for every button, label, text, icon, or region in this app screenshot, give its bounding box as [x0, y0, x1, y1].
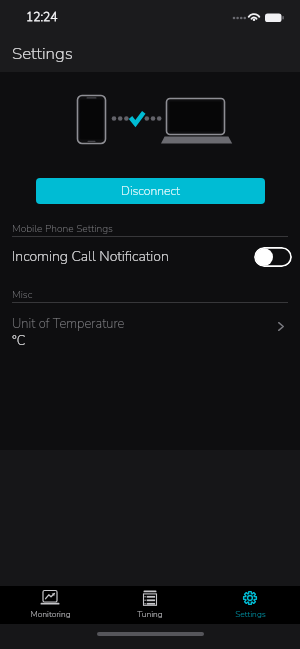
button[interactable]: Unit of Temperature — [0, 306, 300, 354]
staticText: Misc — [12, 288, 33, 302]
staticText: Unit of Temperature — [12, 315, 125, 333]
staticText: Tuning — [137, 608, 163, 620]
staticText: Mobile Phone Settings — [12, 222, 113, 236]
staticText: 12:24 — [26, 9, 58, 25]
staticText: °C — [12, 332, 26, 350]
button[interactable]: Tuning — [100, 586, 200, 624]
staticText: Settings — [12, 42, 73, 65]
button[interactable]: Settings — [200, 586, 300, 624]
button[interactable]: Disconnect — [36, 178, 265, 204]
staticText: Settings — [235, 608, 266, 620]
staticText: Monitoring — [30, 608, 71, 620]
button[interactable]: Incoming Call Notification — [0, 240, 300, 273]
staticText: Disconnect — [121, 183, 181, 200]
staticText: Incoming Call Notification — [12, 247, 169, 266]
button[interactable]: Incoming Call Notification toggle — [254, 247, 292, 267]
button[interactable]: Monitoring — [0, 586, 100, 624]
